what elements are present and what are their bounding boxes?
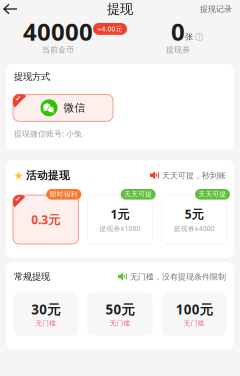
- staticText: 5元: [185, 206, 204, 222]
- button[interactable]: 50元: [87, 292, 153, 335]
- staticText: 张: [185, 32, 193, 42]
- staticText: 无门槛: [109, 319, 130, 327]
- button[interactable]: 100元: [162, 292, 227, 335]
- staticText: 100元: [176, 300, 213, 318]
- staticText: 提现券: [166, 45, 190, 55]
- staticText: =4.00元: [97, 24, 122, 33]
- staticText: 40000: [23, 16, 93, 47]
- staticText: 提现券x4000: [174, 224, 215, 233]
- staticText: 0.3元: [31, 211, 60, 227]
- staticText: 提现记录: [200, 4, 232, 14]
- staticText: 常规提现: [14, 271, 50, 282]
- button[interactable]: 提现记录: [200, 0, 240, 18]
- staticText: 提现券x1000: [99, 224, 140, 233]
- staticText: 0: [171, 16, 185, 47]
- staticText: 天天可提，秒到账: [162, 171, 226, 180]
- button[interactable]: 5元: [162, 195, 227, 244]
- staticText: ?: [198, 32, 201, 41]
- staticText: 无门槛: [184, 319, 205, 327]
- staticText: 提现方式: [14, 71, 50, 82]
- staticText: 无门槛: [35, 319, 56, 327]
- button[interactable]: 微信: [6, 82, 113, 121]
- staticText: 30元: [31, 300, 60, 318]
- button[interactable]: 0.3元: [13, 195, 78, 244]
- staticText: 活动提现: [26, 169, 70, 182]
- button[interactable]: 1元: [87, 195, 153, 244]
- staticText: 提现微信账号: 小兔: [14, 128, 82, 139]
- staticText: 天天可提: [198, 190, 226, 198]
- button[interactable]: 返回: [0, 0, 18, 18]
- staticText: 50元: [105, 300, 134, 318]
- staticText: 提现: [107, 1, 133, 17]
- staticText: 微信: [63, 101, 85, 114]
- button[interactable]: 30元: [13, 292, 78, 335]
- staticText: 无门槛，没有提现条件限制: [130, 272, 226, 282]
- staticText: 1元: [110, 206, 129, 222]
- staticText: 限时福利: [50, 190, 78, 198]
- staticText: 天天可提: [124, 190, 152, 198]
- staticText: 当前金币: [42, 45, 74, 55]
